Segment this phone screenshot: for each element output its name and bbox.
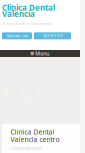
staticText: Solicitar cita <box>6 33 27 38</box>
button[interactable]: 963 913 570 <box>34 32 71 39</box>
button[interactable]: Menu <box>0 50 80 57</box>
staticText: Clínica Dental <box>10 128 54 136</box>
staticText: Tu clínica dental en Valencia centro <box>2 22 51 26</box>
staticText: Valencia <box>2 9 35 19</box>
staticText: Valencia centro <box>10 135 59 144</box>
button[interactable]: Solicitar cita <box>2 32 32 39</box>
staticText: Menu <box>35 50 49 57</box>
staticText: 963 913 570 <box>42 33 62 38</box>
staticText: Clínica Dental Valencia <box>10 147 41 150</box>
staticText: Clínica Dental <box>2 2 55 13</box>
